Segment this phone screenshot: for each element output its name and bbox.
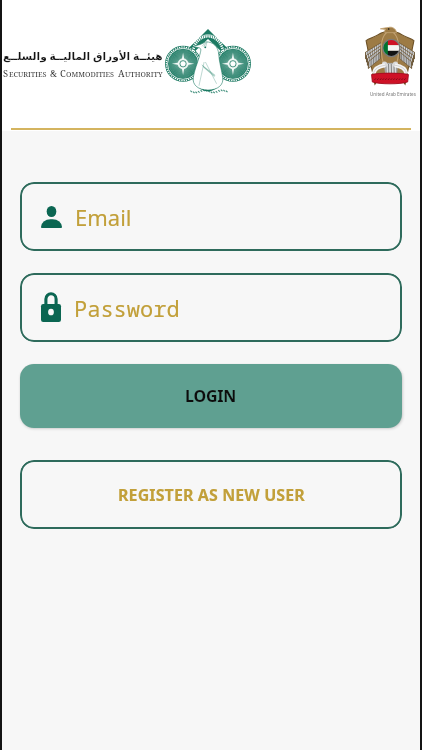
staticText: United Arab Emirates [370,91,416,97]
staticText: OMMODITIES [66,69,115,79]
staticText: هيئــة الأوراق الماليــة والسلــع [3,49,163,63]
staticText: & [50,67,57,80]
staticText: Password [74,293,180,323]
staticText: S [3,67,9,80]
staticText: A [118,67,125,80]
staticText: C [60,67,66,80]
staticText: UTHORITY [125,69,163,79]
staticText: LOGIN [185,385,237,407]
staticText: ECURITIES [9,69,47,79]
button[interactable]: Password [20,273,402,342]
staticText: REGISTER AS NEW USER [118,484,305,506]
button[interactable]: REGISTER AS NEW USER [20,460,402,529]
button[interactable]: Email [20,182,402,251]
staticText: Email [75,202,132,232]
button[interactable]: LOGIN [20,364,402,428]
